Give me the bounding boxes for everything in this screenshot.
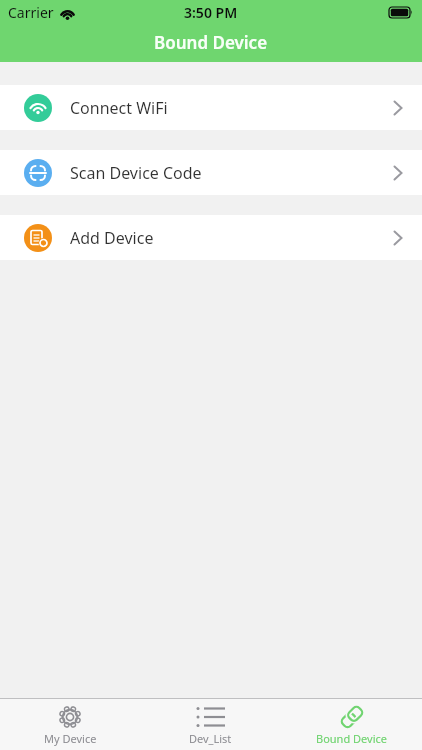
staticText: Scan Device Code [70,162,202,184]
staticText: Connect WiFi [70,97,168,119]
staticText: Carrier [8,3,54,22]
staticText: Bound Device [316,731,387,746]
staticText: My Device [44,731,97,746]
button[interactable]: Connect WiFi [0,85,422,130]
staticText: Dev_List [189,731,232,746]
button[interactable]: My Device [0,699,140,750]
staticText: Add Device [70,227,154,249]
button[interactable]: Add Device [0,215,422,260]
button[interactable]: Scan Device Code [0,150,422,195]
staticText: Bound Device [154,31,268,54]
staticText: 3:50 PM [184,3,238,22]
button[interactable]: Bound Device [281,699,422,750]
button[interactable]: Dev_List [140,699,281,750]
